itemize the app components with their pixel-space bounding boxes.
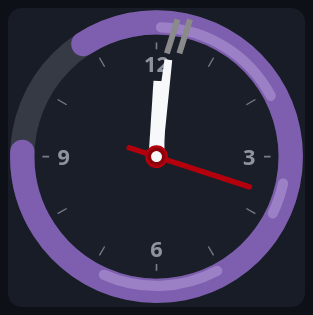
button[interactable]: Analog watch face with activity progress… [8,8,305,307]
